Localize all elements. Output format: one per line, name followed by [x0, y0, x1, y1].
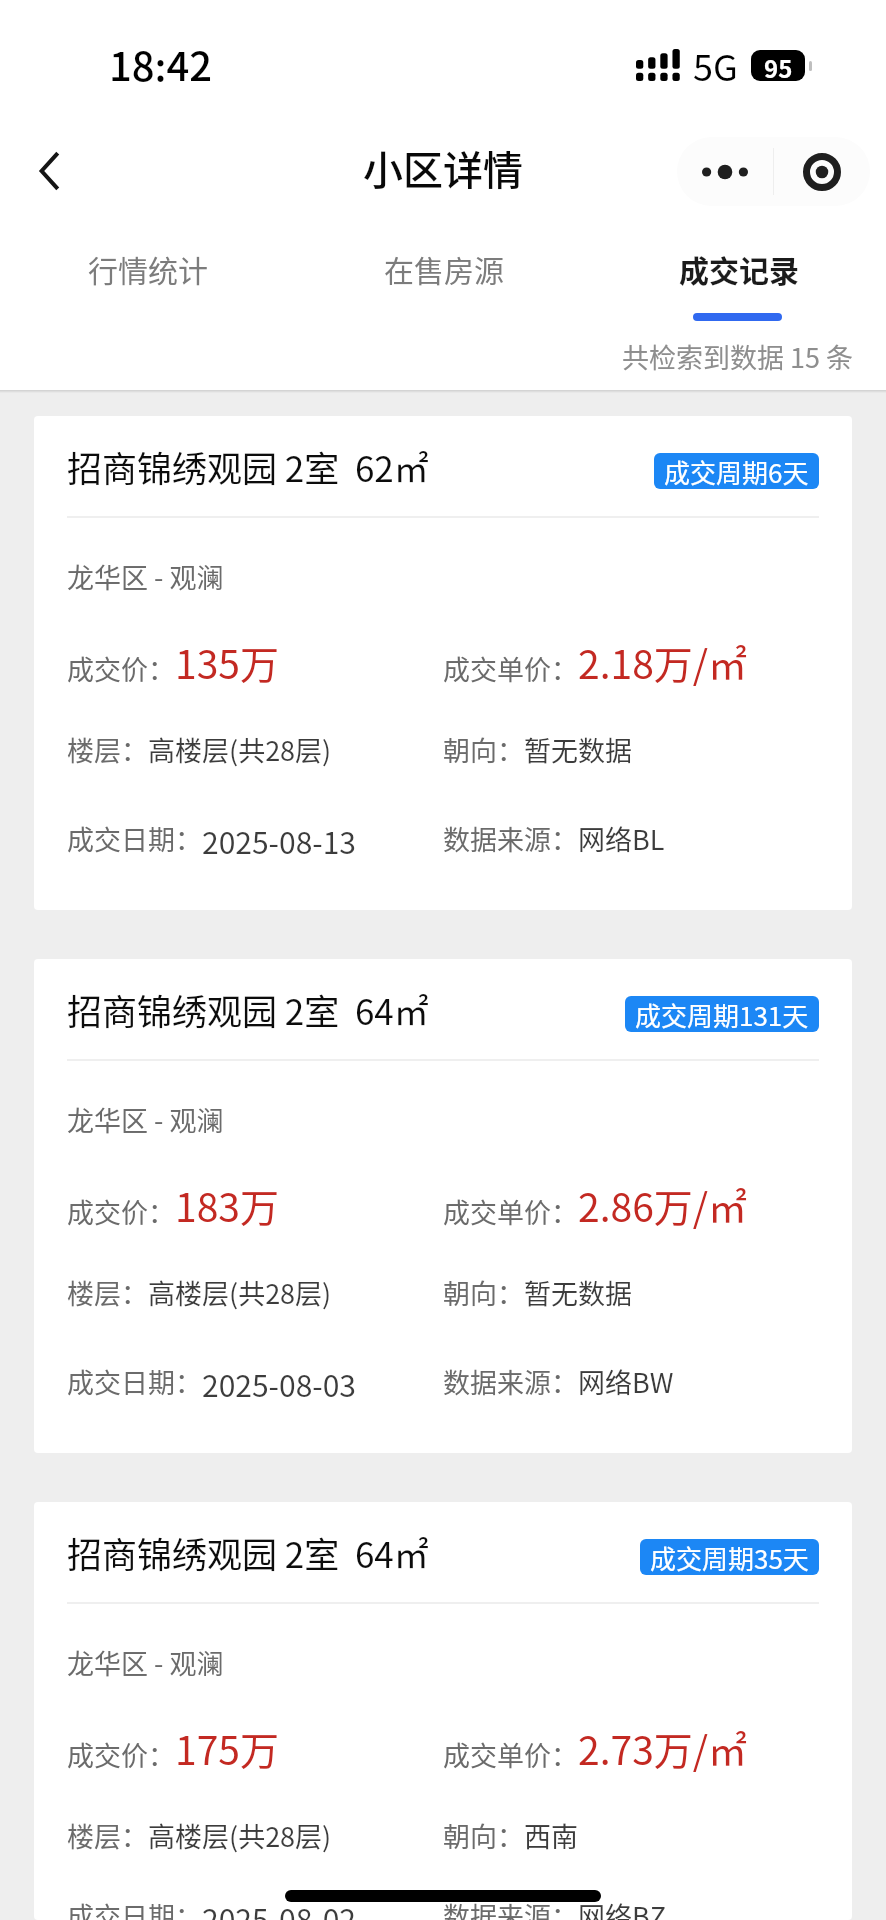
staticText: 小区详情: [363, 139, 523, 197]
staticText: 朝向：: [443, 1816, 524, 1855]
staticText: 暂无数据: [524, 1273, 632, 1312]
staticText: 共检索到数据 15 条: [622, 337, 854, 376]
button[interactable]: 招商锦绣观园 2室 64㎡: [34, 959, 852, 1453]
button[interactable]: More options: [677, 137, 773, 206]
staticText: 招商锦绣观园 2室 64㎡: [67, 1527, 429, 1578]
staticText: 楼层：: [67, 730, 148, 769]
button[interactable]: 成交记录: [591, 230, 886, 306]
staticText: 数据来源：: [443, 1362, 578, 1401]
staticText: 175万: [175, 1720, 279, 1774]
button[interactable]: 行情统计: [0, 230, 296, 306]
staticText: 在售房源: [384, 247, 504, 290]
button[interactable]: 招商锦绣观园 2室 64㎡: [34, 1502, 852, 1920]
staticText: 成交价：: [67, 1735, 175, 1774]
staticText: 高楼层(共28层): [148, 1273, 332, 1312]
staticText: 2.18万/㎡: [578, 634, 748, 688]
staticText: 183万: [175, 1177, 279, 1231]
button[interactable]: Close mini program: [774, 137, 870, 206]
staticText: 数据来源：: [443, 819, 578, 858]
staticText: 网络BW: [578, 1362, 674, 1401]
button[interactable]: Back: [10, 132, 88, 210]
button[interactable]: 在售房源: [296, 230, 591, 306]
staticText: 成交价：: [67, 1192, 175, 1231]
staticText: 西南: [524, 1816, 578, 1855]
staticText: 2025-08-02: [202, 1896, 357, 1920]
staticText: 2025-08-13: [202, 819, 357, 862]
staticText: 2.86万/㎡: [578, 1177, 748, 1231]
staticText: 成交记录: [679, 247, 799, 290]
staticText: 成交日期：: [67, 1362, 202, 1401]
staticText: 龙华区 - 观澜: [67, 1643, 224, 1682]
staticText: 朝向：: [443, 1273, 524, 1312]
button[interactable]: 招商锦绣观园 2室 62㎡: [34, 416, 852, 910]
staticText: 暂无数据: [524, 730, 632, 769]
staticText: 行情统计: [88, 247, 208, 290]
staticText: 成交日期：: [67, 1896, 202, 1920]
staticText: 高楼层(共28层): [148, 1816, 332, 1855]
staticText: 成交单价：: [443, 1735, 578, 1774]
staticText: 高楼层(共28层): [148, 730, 332, 769]
staticText: 95: [764, 50, 793, 81]
staticText: 成交日期：: [67, 819, 202, 858]
staticText: 成交单价：: [443, 1192, 578, 1231]
staticText: 网络BL: [578, 819, 665, 858]
staticText: 数据来源：: [443, 1896, 578, 1920]
staticText: 成交周期6天: [664, 453, 809, 489]
staticText: 成交单价：: [443, 649, 578, 688]
staticText: 2025-08-03: [202, 1362, 357, 1405]
staticText: 5G: [693, 39, 738, 91]
staticText: 网络BZ: [578, 1896, 666, 1920]
staticText: 龙华区 - 观澜: [67, 1100, 224, 1139]
staticText: 招商锦绣观园 2室 62㎡: [67, 441, 429, 492]
staticText: 招商锦绣观园 2室 64㎡: [67, 984, 429, 1035]
staticText: 135万: [175, 634, 279, 688]
staticText: 楼层：: [67, 1816, 148, 1855]
staticText: 成交周期131天: [635, 996, 809, 1032]
staticText: 成交周期35天: [650, 1539, 809, 1575]
staticText: 楼层：: [67, 1273, 148, 1312]
staticText: 18:42: [109, 35, 213, 93]
staticText: 2.73万/㎡: [578, 1720, 748, 1774]
staticText: 成交价：: [67, 649, 175, 688]
staticText: 朝向：: [443, 730, 524, 769]
staticText: 龙华区 - 观澜: [67, 557, 224, 596]
